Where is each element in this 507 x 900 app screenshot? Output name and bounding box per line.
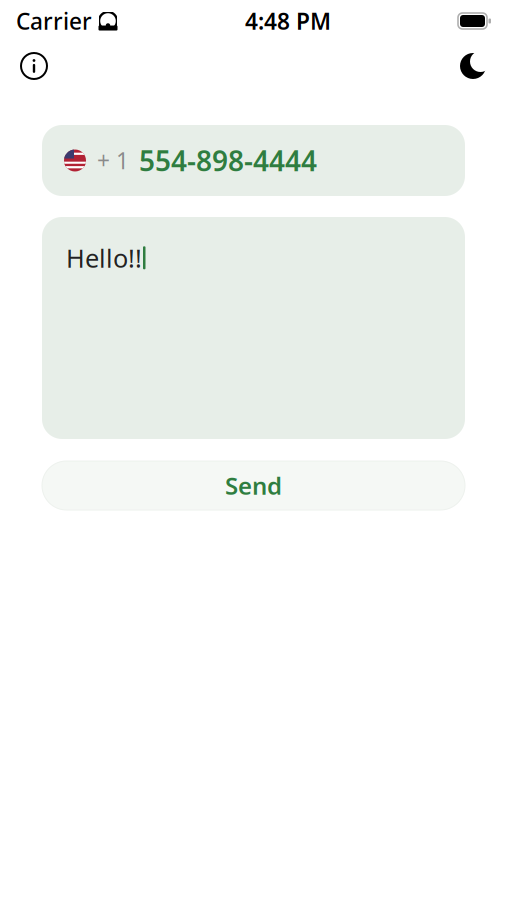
button[interactable]: + 1	[42, 125, 465, 196]
button[interactable]: Send	[42, 461, 465, 510]
staticText: 554-898-4444	[139, 142, 317, 179]
staticText: Send	[225, 470, 282, 501]
button[interactable]: Toggle dark mode	[451, 44, 495, 88]
button[interactable]: Info	[12, 44, 56, 88]
staticText: Hello!!	[66, 241, 142, 275]
staticText: + 1	[97, 145, 129, 175]
button[interactable]: Hello!!	[42, 217, 465, 439]
staticText: Carrier	[16, 6, 92, 36]
staticText: 4:48 PM	[245, 6, 331, 36]
